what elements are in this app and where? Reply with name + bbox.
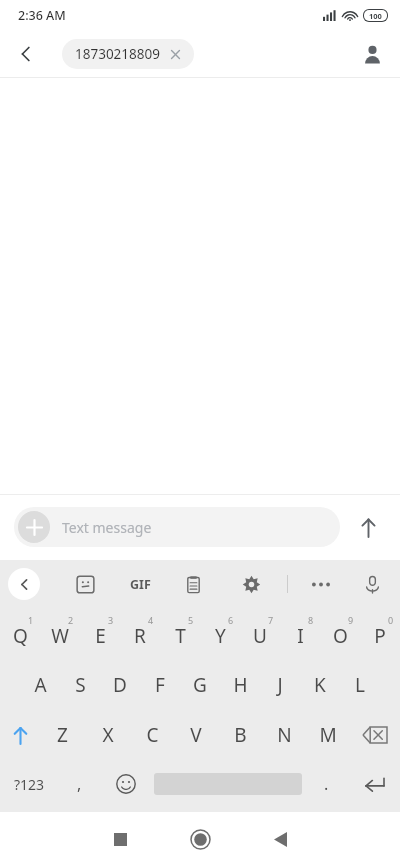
button[interactable]: Emoji xyxy=(100,760,152,808)
staticText: V xyxy=(190,722,202,748)
button[interactable]: . xyxy=(304,760,348,808)
staticText: U xyxy=(253,623,267,649)
staticText: 9 xyxy=(348,614,354,626)
button[interactable]: Back xyxy=(6,34,46,74)
staticText: 3 xyxy=(108,614,114,626)
staticText: 4 xyxy=(148,614,154,626)
button[interactable]: K xyxy=(300,660,340,710)
button[interactable]: Shift xyxy=(0,710,40,760)
button[interactable]: W xyxy=(40,608,80,660)
staticText: Q xyxy=(13,623,28,649)
staticText: F xyxy=(155,672,165,698)
staticText: B xyxy=(234,722,247,748)
staticText: E xyxy=(95,623,106,649)
button[interactable]: R xyxy=(120,608,160,660)
button[interactable]: A xyxy=(20,660,60,710)
staticText: D xyxy=(113,672,127,698)
button[interactable]: More options xyxy=(303,566,339,602)
staticText: 5 xyxy=(188,614,194,626)
staticText: 2:36 AM xyxy=(18,7,66,24)
button[interactable]: M xyxy=(306,710,350,760)
button[interactable]: Q xyxy=(0,608,40,660)
button[interactable]: D xyxy=(100,660,140,710)
button[interactable]: E xyxy=(80,608,120,660)
button[interactable]: I xyxy=(280,608,320,660)
staticText: O xyxy=(333,623,348,649)
staticText: 7 xyxy=(268,614,274,626)
button[interactable]: Settings xyxy=(233,566,269,602)
button[interactable]: O xyxy=(320,608,360,660)
staticText: . xyxy=(324,773,329,795)
staticText: 0 xyxy=(388,614,394,626)
button[interactable]: Y xyxy=(200,608,240,660)
button[interactable]: N xyxy=(262,710,306,760)
button[interactable]: GIF xyxy=(122,566,158,602)
button[interactable]: 18730218809 xyxy=(62,39,194,69)
button[interactable]: ?123 xyxy=(0,760,58,808)
button[interactable]: Z xyxy=(40,710,85,760)
staticText: W xyxy=(51,623,69,649)
button[interactable]: V xyxy=(174,710,218,760)
staticText: H xyxy=(233,672,248,698)
button[interactable]: Voice input xyxy=(354,566,390,602)
button[interactable]: G xyxy=(180,660,220,710)
button[interactable]: Back xyxy=(240,812,320,866)
staticText: P xyxy=(374,623,386,649)
staticText: J xyxy=(277,672,283,698)
staticText: GIF xyxy=(130,576,151,593)
staticText: L xyxy=(355,672,365,698)
staticText: C xyxy=(146,722,159,748)
staticText: 18730218809 xyxy=(75,45,160,63)
staticText: K xyxy=(314,672,326,698)
button[interactable]: F xyxy=(140,660,180,710)
staticText: , xyxy=(77,773,82,795)
staticText: M xyxy=(319,722,337,748)
staticText: 8 xyxy=(308,614,314,626)
staticText: Text message xyxy=(62,518,152,537)
button[interactable]: Send xyxy=(348,507,388,547)
staticText: ?123 xyxy=(14,775,45,794)
button[interactable]: Recent apps xyxy=(80,812,160,866)
staticText: R xyxy=(134,623,146,649)
staticText: N xyxy=(277,722,292,748)
button[interactable]: Enter xyxy=(348,760,400,808)
button[interactable]: Add attachment xyxy=(18,511,50,543)
staticText: 1 xyxy=(28,614,34,626)
button[interactable]: J xyxy=(260,660,300,710)
button[interactable]: L xyxy=(340,660,380,710)
staticText: A xyxy=(34,672,47,698)
staticText: S xyxy=(75,672,86,698)
staticText: 2 xyxy=(68,614,74,626)
button[interactable]: S xyxy=(60,660,100,710)
staticText: Z xyxy=(57,722,68,748)
button[interactable]: Add attachment xyxy=(14,507,340,547)
button[interactable]: Backspace xyxy=(350,710,400,760)
button[interactable]: Contact details xyxy=(352,34,392,74)
button[interactable]: Home xyxy=(160,812,240,866)
button[interactable]: P xyxy=(360,608,400,660)
staticText: X xyxy=(102,722,114,748)
button[interactable]: X xyxy=(85,710,130,760)
button[interactable]: H xyxy=(220,660,260,710)
staticText: G xyxy=(193,672,207,698)
staticText: 100 xyxy=(369,11,382,21)
button[interactable]: B xyxy=(218,710,262,760)
button[interactable]: , xyxy=(58,760,100,808)
button[interactable]: C xyxy=(130,710,174,760)
staticText: I xyxy=(297,623,304,649)
staticText: Y xyxy=(215,623,226,649)
button[interactable]: U xyxy=(240,608,280,660)
button[interactable]: Stickers xyxy=(67,566,103,602)
button[interactable]: T xyxy=(160,608,200,660)
button[interactable]: Close toolbar xyxy=(8,568,40,600)
staticText: 6 xyxy=(228,614,234,626)
staticText: T xyxy=(175,623,186,649)
button[interactable]: Clipboard xyxy=(175,566,211,602)
